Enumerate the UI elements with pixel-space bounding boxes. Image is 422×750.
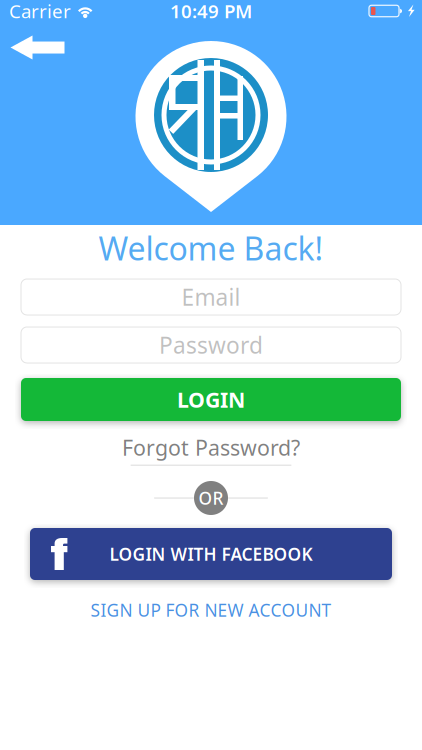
staticText: SIGN UP FOR NEW ACCOUNT (90, 598, 331, 621)
staticText: Carrier (9, 0, 71, 23)
staticText: Forgot Password? (122, 433, 300, 462)
staticText: 10:49 PM (170, 0, 252, 23)
button[interactable]: Email (21, 279, 401, 315)
button[interactable]: Password (21, 327, 401, 363)
button[interactable]: LOGIN WITH FACEBOOK (21, 528, 401, 580)
button[interactable]: Forgot Password? (122, 435, 300, 464)
staticText: Welcome Back! (98, 227, 323, 269)
staticText: LOGIN (177, 385, 245, 414)
button[interactable]: Back (0, 22, 76, 65)
staticText: OR (198, 486, 223, 509)
staticText: LOGIN WITH FACEBOOK (109, 542, 312, 565)
button[interactable]: LOGIN (21, 378, 401, 421)
staticText: Password (159, 330, 263, 360)
button[interactable]: SIGN UP FOR NEW ACCOUNT (90, 599, 331, 621)
staticText: Email (181, 282, 240, 312)
